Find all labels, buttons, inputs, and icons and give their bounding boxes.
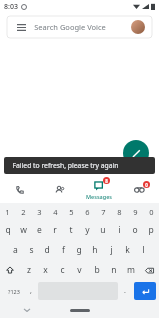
- button[interactable]: o: [127, 220, 143, 240]
- button[interactable]: Backspace: [139, 260, 159, 280]
- staticText: e: [37, 224, 42, 236]
- button[interactable]: d: [39, 240, 55, 260]
- button[interactable]: n: [105, 260, 122, 280]
- staticText: ?123: [8, 288, 20, 295]
- button[interactable]: 4: [47, 203, 63, 220]
- staticText: h: [92, 244, 98, 256]
- staticText: f: [62, 244, 65, 256]
- staticText: 1: [5, 207, 10, 217]
- button[interactable]: s: [23, 240, 39, 260]
- button[interactable]: g: [71, 240, 87, 260]
- staticText: ,: [30, 286, 32, 296]
- staticText: y: [85, 224, 90, 236]
- staticText: z: [27, 264, 31, 276]
- staticText: t: [69, 224, 73, 236]
- staticText: j: [110, 244, 113, 256]
- button[interactable]: t: [63, 220, 79, 240]
- button[interactable]: f: [55, 240, 71, 260]
- button[interactable]: c: [54, 260, 71, 280]
- staticText: 4: [53, 207, 58, 217]
- button[interactable]: l: [135, 240, 151, 260]
- button[interactable]: p: [143, 220, 159, 240]
- button[interactable]: Failed to refresh, please try again: [4, 157, 155, 174]
- button[interactable]: 8: [111, 203, 127, 220]
- staticText: p: [148, 224, 154, 236]
- button[interactable]: Shift: [0, 260, 20, 280]
- button[interactable]: Open navigation menu: [7, 16, 152, 38]
- staticText: 0: [149, 207, 154, 217]
- staticText: b: [94, 264, 100, 276]
- button[interactable]: w: [15, 220, 31, 240]
- staticText: x: [43, 264, 48, 276]
- button[interactable]: u: [95, 220, 111, 240]
- staticText: m: [127, 264, 135, 276]
- button[interactable]: 7: [95, 203, 111, 220]
- button[interactable]: x: [37, 260, 54, 280]
- staticText: s: [29, 244, 34, 256]
- button[interactable]: ?123: [3, 282, 24, 300]
- button[interactable]: q: [0, 220, 15, 240]
- button[interactable]: 6: [79, 203, 95, 220]
- button[interactable]: 0: [143, 203, 159, 220]
- staticText: i: [118, 224, 121, 236]
- staticText: n: [111, 264, 117, 276]
- button[interactable]: m: [122, 260, 139, 280]
- staticText: g: [76, 244, 82, 256]
- button[interactable]: 9: [127, 203, 143, 220]
- staticText: 8: [105, 178, 108, 184]
- staticText: Search Google Voice: [34, 22, 106, 32]
- button[interactable]: k: [119, 240, 135, 260]
- button[interactable]: Hide keyboard: [21, 304, 33, 316]
- staticText: .: [124, 286, 126, 296]
- button[interactable]: Home: [70, 309, 90, 312]
- button[interactable]: 3: [31, 203, 47, 220]
- button[interactable]: Messages: [79, 176, 119, 203]
- staticText: r: [53, 224, 57, 236]
- button[interactable]: a: [7, 240, 23, 260]
- staticText: 8:03: [4, 2, 18, 12]
- staticText: 7: [101, 207, 106, 217]
- button[interactable]: Enter: [134, 282, 156, 300]
- staticText: q: [5, 224, 11, 236]
- button[interactable]: z: [20, 260, 37, 280]
- button[interactable]: 2: [15, 203, 31, 220]
- staticText: 5: [69, 207, 74, 217]
- button[interactable]: 1: [0, 203, 15, 220]
- button[interactable]: y: [79, 220, 95, 240]
- button[interactable]: i: [111, 220, 127, 240]
- staticText: k: [125, 244, 130, 256]
- staticText: 3: [37, 207, 42, 217]
- button[interactable]: e: [31, 220, 47, 240]
- button[interactable]: b: [88, 260, 105, 280]
- button[interactable]: Compose message: [123, 140, 149, 166]
- staticText: w: [20, 224, 27, 236]
- button[interactable]: r: [47, 220, 63, 240]
- staticText: l: [142, 244, 145, 256]
- staticText: 6: [85, 207, 90, 217]
- staticText: v: [77, 264, 82, 276]
- button[interactable]: Account: [131, 20, 145, 34]
- staticText: d: [44, 244, 50, 256]
- button[interactable]: h: [87, 240, 103, 260]
- staticText: Failed to refresh, please try again: [12, 161, 119, 170]
- staticText: u: [100, 224, 106, 236]
- staticText: o: [132, 224, 138, 236]
- button[interactable]: 5: [63, 203, 79, 220]
- staticText: 8: [117, 207, 122, 217]
- staticText: 2: [21, 207, 26, 217]
- button[interactable]: .: [118, 282, 132, 300]
- button[interactable]: Voicemail: [119, 176, 159, 203]
- button[interactable]: j: [103, 240, 119, 260]
- staticText: Messages: [86, 193, 112, 200]
- button[interactable]: Calls: [0, 176, 39, 203]
- staticText: 9: [133, 207, 138, 217]
- staticText: a: [13, 244, 18, 256]
- button[interactable]: ,: [24, 282, 38, 300]
- button[interactable]: Contacts: [39, 176, 79, 203]
- staticText: 0: [145, 182, 148, 188]
- button[interactable]: v: [71, 260, 88, 280]
- button[interactable]: Open navigation menu: [14, 20, 28, 34]
- staticText: c: [60, 264, 65, 276]
